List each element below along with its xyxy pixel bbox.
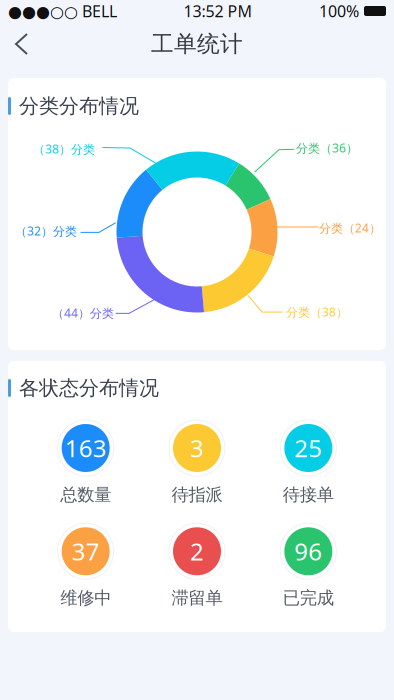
staticText: 待指派 [171,484,222,505]
button[interactable]: 96 [253,523,364,609]
staticText: 维修中 [60,587,111,609]
button[interactable]: 163 [30,420,141,505]
staticText: 工单统计 [151,30,243,58]
staticText: 3 [190,432,204,464]
staticText: 37 [72,535,100,567]
staticText: ●●●○○ BELL [8,0,117,22]
button[interactable]: 37 [30,523,141,609]
staticText: 分类（24） [319,220,381,236]
staticText: 总数量 [60,484,111,505]
staticText: 163 [65,432,107,464]
staticText: 已完成 [283,587,334,609]
staticText: 滞留单 [171,587,222,609]
staticText: 2 [190,535,204,567]
staticText: （32）分类 [15,223,77,239]
staticText: 96 [294,535,322,567]
staticText: 100% [319,0,359,22]
staticText: 25 [294,432,322,464]
staticText: 13:52 PM [183,0,252,22]
staticText: 分类分布情况 [19,94,139,118]
staticText: 分类（38） [286,304,348,320]
staticText: （44）分类 [52,305,114,321]
button[interactable]: Back [0,22,41,66]
button[interactable]: 25 [253,420,364,505]
staticText: 各状态分布情况 [19,376,159,400]
button[interactable]: 3 [141,420,253,505]
staticText: 分类（36） [296,140,358,156]
button[interactable]: 2 [141,523,253,609]
staticText: （38）分类 [33,141,95,157]
staticText: 待接单 [283,484,334,505]
